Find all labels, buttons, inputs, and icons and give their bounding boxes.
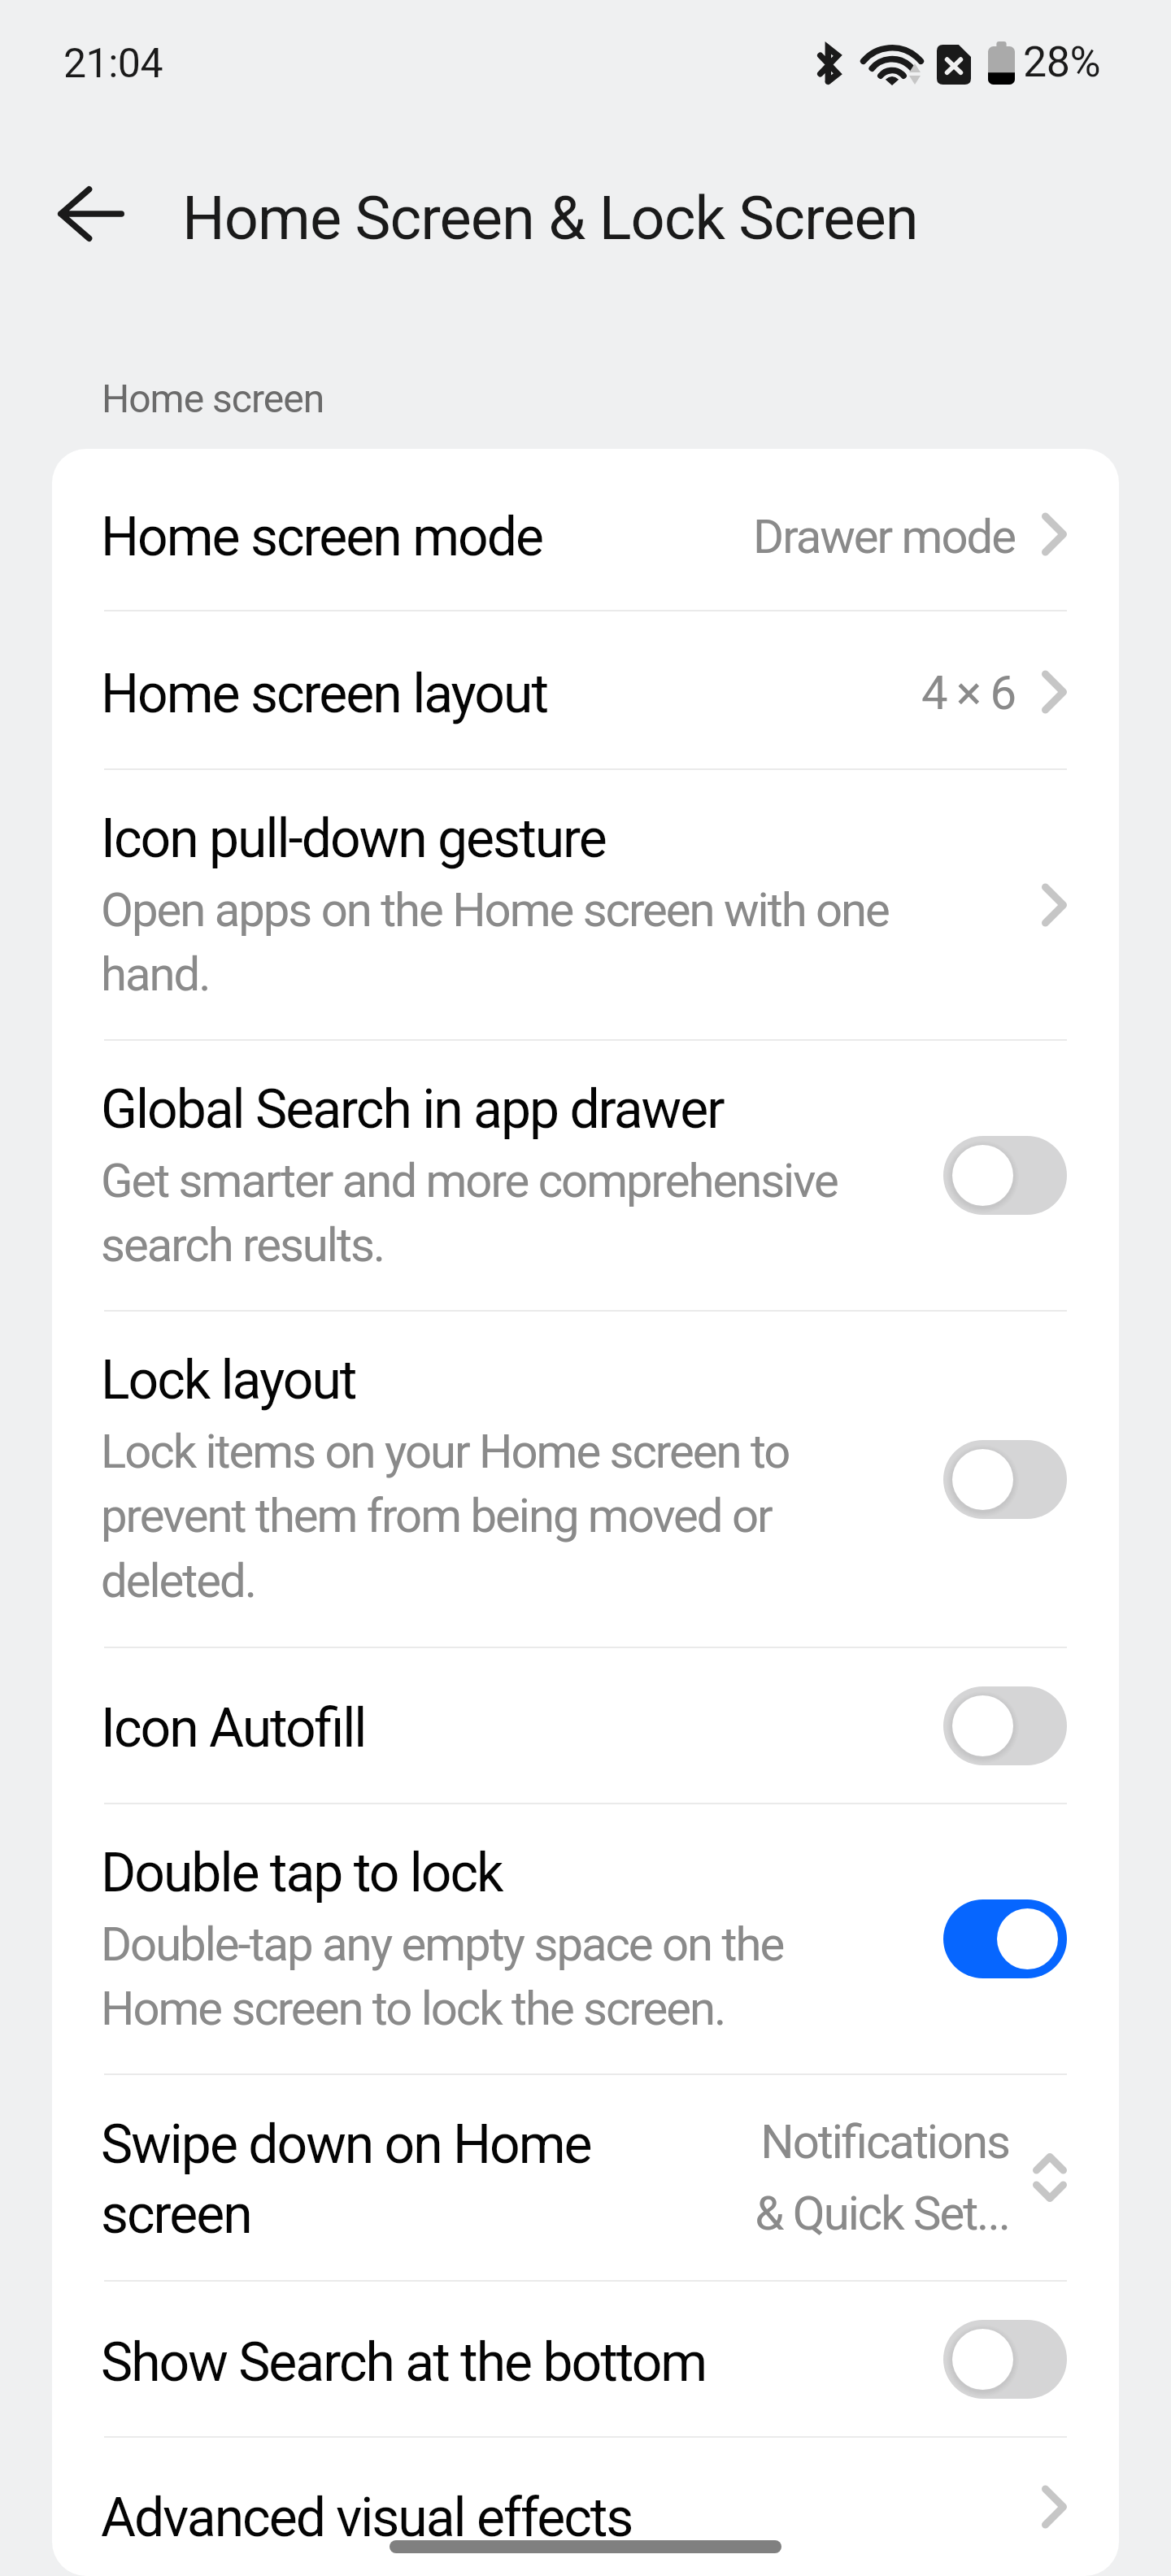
staticText: Double-tap any empty space on the Home s… <box>101 1917 816 2036</box>
button[interactable]: Switch off <box>943 1136 1067 1215</box>
button[interactable]: Home screen mode <box>52 449 1119 610</box>
staticText: Get smarter and more comprehensive searc… <box>101 1153 841 1273</box>
button[interactable]: Icon Autofill <box>52 1648 1119 1803</box>
button[interactable]: Back <box>33 155 150 272</box>
staticText: Double tap to lock <box>101 1842 503 1904</box>
staticText: Home screen layout <box>101 663 547 725</box>
button[interactable]: Switch off <box>943 2320 1067 2399</box>
button[interactable]: Show Search at the bottom <box>52 2282 1119 2436</box>
button[interactable]: Icon pull-down gesture <box>52 770 1119 1039</box>
staticText: Swipe down on Home screen <box>101 2113 621 2246</box>
staticText: Icon pull-down gesture <box>101 807 606 870</box>
button[interactable]: Advanced visual effects <box>52 2438 1119 2576</box>
staticText: Drawer mode <box>753 509 1015 564</box>
staticText: Home Screen & Lock Screen <box>182 183 918 254</box>
button[interactable]: Swipe down on Home screen <box>52 2075 1119 2280</box>
staticText: Icon Autofill <box>101 1697 366 1760</box>
staticText: Home screen <box>102 376 324 421</box>
staticText: Notifications & Quick Set... <box>733 2114 1009 2241</box>
button[interactable]: Double tap to lock <box>52 1804 1119 2073</box>
staticText: Show Search at the bottom <box>101 2331 707 2394</box>
staticText: Home screen mode <box>101 506 542 568</box>
staticText: 4 × 6 <box>921 665 1015 720</box>
staticText: 21:04 <box>63 40 163 88</box>
staticText: Open apps on the Home screen with one ha… <box>101 882 898 1002</box>
staticText: Global Search in app drawer <box>101 1078 724 1141</box>
staticText: Lock layout <box>101 1349 356 1412</box>
button[interactable]: Switch on <box>943 1899 1067 1978</box>
staticText: 28% <box>1023 37 1101 87</box>
button[interactable]: Switch off <box>943 1686 1067 1765</box>
button[interactable]: Global Search in app drawer <box>52 1041 1119 1310</box>
staticText: Advanced visual effects <box>101 2487 633 2549</box>
button[interactable]: Lock layout <box>52 1312 1119 1647</box>
button[interactable]: Home screen layout <box>52 611 1119 768</box>
button[interactable]: Switch off <box>943 1440 1067 1519</box>
staticText: Lock items on your Home screen to preven… <box>101 1424 800 1608</box>
